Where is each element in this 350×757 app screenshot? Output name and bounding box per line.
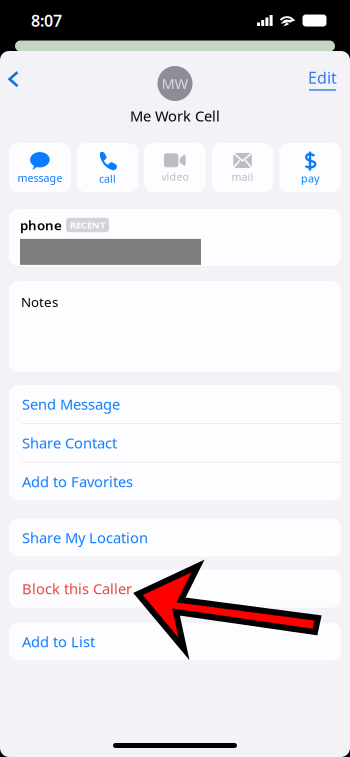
button[interactable]: Edit — [308, 51, 350, 105]
button[interactable]: Back — [0, 54, 33, 102]
staticText: Notes — [21, 293, 58, 311]
staticText: message — [17, 171, 62, 185]
staticText: video — [161, 170, 188, 184]
staticText: 8:07 — [31, 10, 62, 31]
button[interactable]: mail — [212, 143, 273, 192]
staticText: RECENT — [70, 219, 105, 231]
staticText: Share My Location — [22, 528, 148, 547]
button[interactable]: video — [144, 143, 206, 192]
button[interactable]: Share Contact — [9, 424, 341, 462]
button[interactable]: call — [77, 143, 138, 192]
staticText: Edit — [308, 67, 337, 88]
staticText: MW — [161, 74, 188, 93]
button[interactable]: Add to Favorites — [9, 463, 341, 501]
button[interactable]: Send Message — [9, 385, 341, 423]
staticText: Share Contact — [22, 433, 117, 453]
button[interactable]: message — [9, 143, 71, 192]
staticText: Add to Favorites — [22, 472, 133, 491]
button[interactable]: pay — [279, 143, 341, 192]
staticText: Me Work Cell — [130, 106, 220, 125]
staticText: Block this Caller — [22, 579, 132, 598]
staticText: Add to List — [22, 632, 95, 651]
button[interactable]: Add to List — [9, 623, 341, 661]
button[interactable]: Share My Location — [9, 519, 341, 557]
staticText: mail — [232, 170, 254, 184]
staticText: phone — [20, 216, 62, 234]
staticText: Send Message — [22, 394, 120, 414]
staticText: pay — [301, 171, 319, 185]
button[interactable]: Block this Caller — [9, 570, 341, 608]
staticText: call — [99, 172, 116, 186]
